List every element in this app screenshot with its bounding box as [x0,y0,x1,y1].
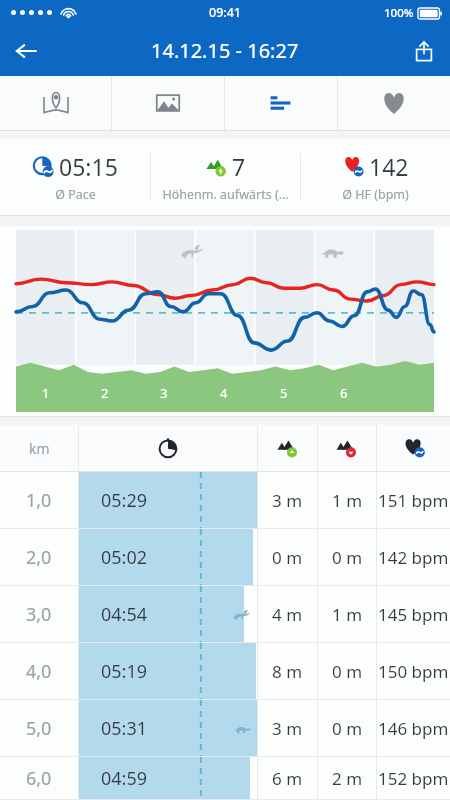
staticText: Ø HF (bpm) [342,186,409,203]
staticText: 1 m [332,603,363,626]
button[interactable]: 7 [151,139,300,215]
staticText: 6,0 [26,766,52,791]
staticText: Höhenm. aufwärts (… [162,186,289,203]
staticText: km [29,439,50,458]
staticText: 09:41 [209,4,242,21]
button[interactable]: Back [0,25,52,76]
button[interactable]: Map [0,76,111,130]
staticText: 5 [280,384,288,402]
staticText: 3 m [272,717,303,740]
button[interactable]: Heart rate [338,76,450,130]
staticText: 0 m [332,717,363,740]
staticText: 6 [340,384,348,402]
button[interactable]: Charts [225,76,337,130]
staticText: 145 bpm [378,603,449,626]
button[interactable]: Photos [112,76,224,130]
button[interactable]: 6,0 [0,757,450,800]
staticText: 150 bpm [378,660,449,683]
button[interactable]: 05:15 [0,139,150,215]
staticText: 142 bpm [378,546,449,569]
staticText: 2 m [332,767,363,790]
staticText: 0 m [272,546,303,569]
staticText: 4 [220,384,228,402]
staticText: 1 [42,384,50,402]
button[interactable]: 5,0 [0,700,450,757]
staticText: 146 bpm [378,717,449,740]
staticText: 151 bpm [378,489,449,512]
staticText: 2 [101,384,109,402]
button[interactable]: 142 [301,139,450,215]
staticText: 3 [160,384,168,402]
staticText: Ø Pace [55,186,96,203]
staticText: 04:59 [101,766,148,791]
staticText: 05:02 [101,545,148,570]
staticText: 142 [369,151,409,182]
staticText: 3 m [272,489,303,512]
staticText: 05:19 [101,659,148,684]
staticText: 4 m [272,603,303,626]
staticText: 05:15 [59,151,118,182]
staticText: 3,0 [26,602,52,627]
button[interactable]: 4,0 [0,643,450,700]
button[interactable]: 1 [0,226,450,416]
staticText: 8 m [272,660,303,683]
staticText: 4,0 [26,659,52,684]
button[interactable]: 3,0 [0,586,450,643]
staticText: 5,0 [26,716,52,741]
staticText: 05:29 [101,488,148,513]
staticText: 2,0 [26,545,52,570]
button[interactable]: 1,0 [0,472,450,529]
staticText: 0 m [332,660,363,683]
button[interactable]: 2,0 [0,529,450,586]
staticText: 152 bpm [378,767,449,790]
staticText: 1 m [332,489,363,512]
staticText: 14.12.15 - 16:27 [151,37,299,64]
button[interactable]: Share [398,25,450,76]
staticText: 7 [232,151,246,182]
staticText: 100% [384,5,414,21]
staticText: 6 m [272,767,303,790]
staticText: 1,0 [26,488,52,513]
staticText: 05:31 [101,716,148,741]
staticText: 0 m [332,546,363,569]
staticText: 04:54 [101,602,148,627]
